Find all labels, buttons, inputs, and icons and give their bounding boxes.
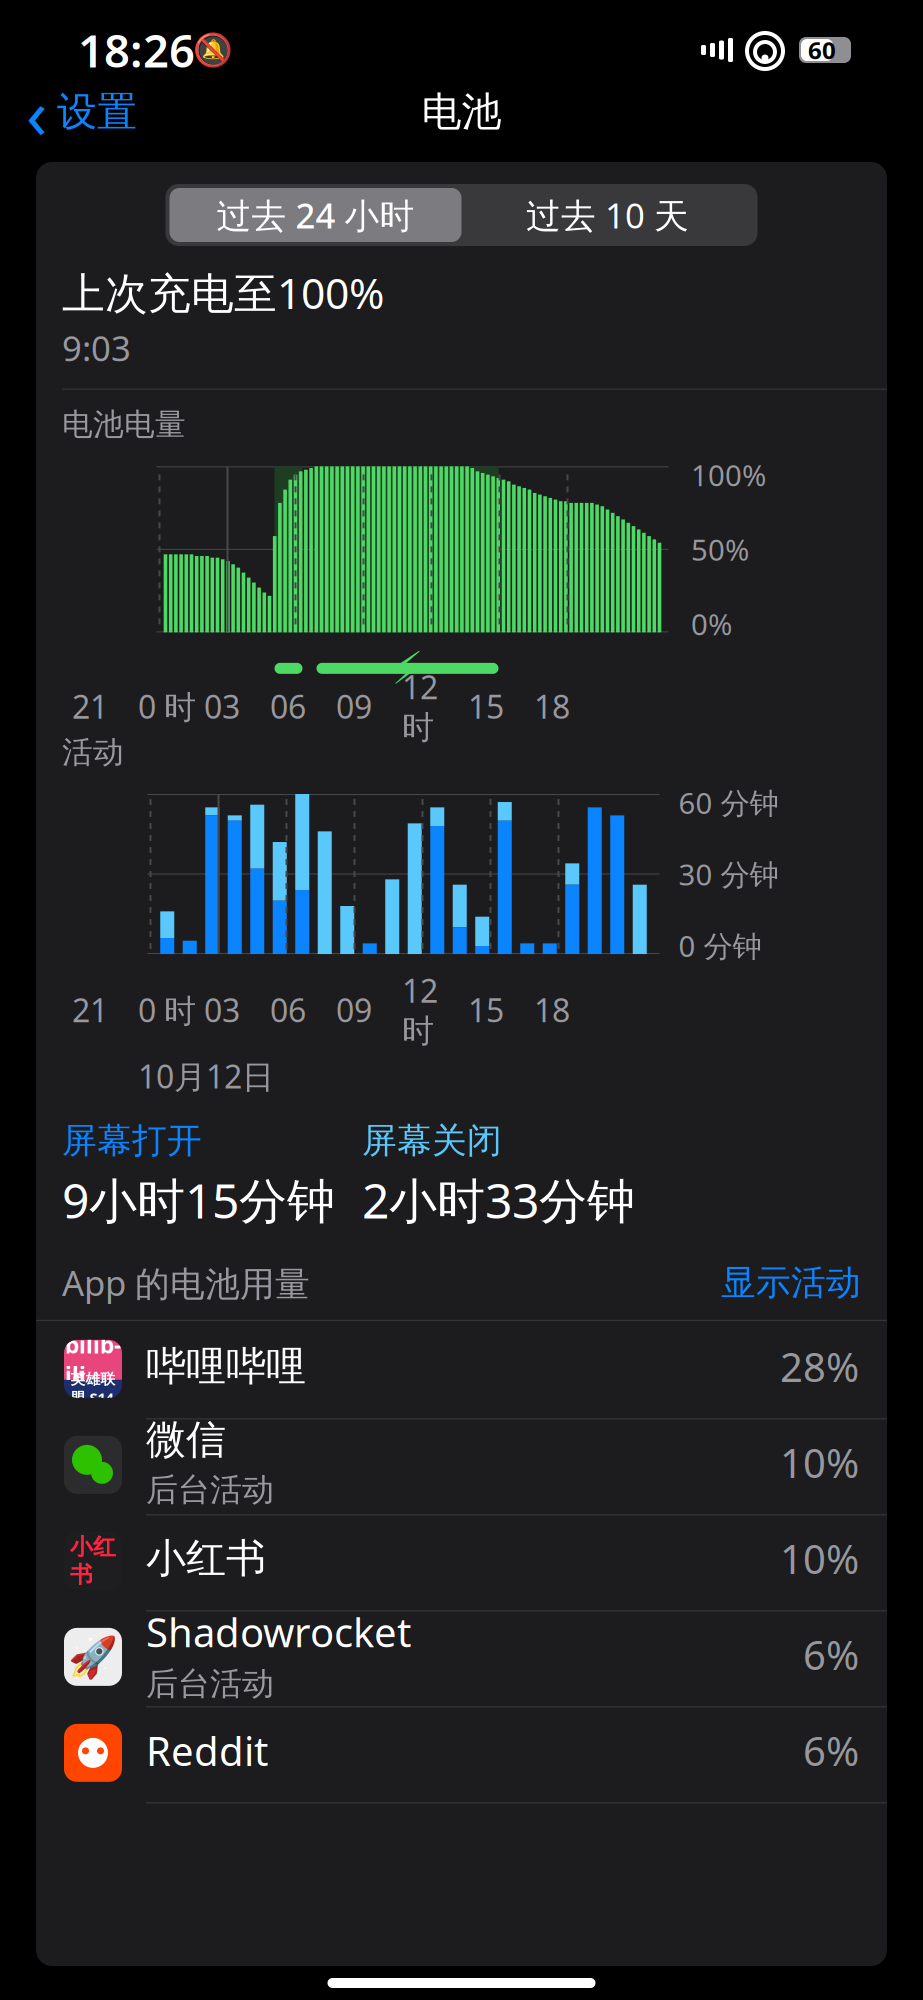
staticText: 09 <box>336 685 372 728</box>
staticText: 小红书 <box>70 1533 116 1589</box>
staticText: 过去 24 小时 <box>216 192 414 238</box>
staticText: 0 分钟 <box>678 926 761 965</box>
staticText: 60 分钟 <box>678 783 778 822</box>
staticText: 后台活动 <box>146 1664 274 1704</box>
staticText: 2小时33分钟 <box>362 1168 635 1232</box>
staticText: 15 <box>468 989 504 1031</box>
staticText: 英雄联盟 S14 <box>70 1370 115 1408</box>
button[interactable]: 过去 10 天 <box>461 188 753 242</box>
staticText: ‹ <box>26 66 47 158</box>
staticText: 60 <box>808 34 836 66</box>
staticText: 0 时 <box>138 685 196 728</box>
staticText: 6% <box>803 1724 859 1777</box>
staticText: 🔕 <box>193 32 233 68</box>
staticText: 100% <box>691 455 766 494</box>
staticText: 03 <box>204 685 240 728</box>
staticText: 12 时 <box>402 665 438 747</box>
staticText: ⚡︎ <box>391 643 423 694</box>
staticText: 9小时15分钟 <box>62 1168 335 1232</box>
button[interactable]: 过去 24 小时 <box>169 188 461 242</box>
staticText: bilibili <box>65 1330 121 1390</box>
staticText: 后台活动 <box>146 1470 274 1510</box>
staticText: 电池 <box>421 87 501 136</box>
button[interactable]: 显示活动 <box>721 1261 861 1304</box>
staticText: 上次充电至100% <box>62 264 384 321</box>
staticText: 显示活动 <box>721 1261 861 1304</box>
staticText: Shadowrocket <box>146 1605 411 1658</box>
staticText: 小红书 <box>146 1534 266 1583</box>
button[interactable]: 🚀 <box>36 1609 887 1705</box>
staticText: 微信 <box>146 1415 226 1464</box>
staticText: App 的电池用量 <box>62 1260 310 1306</box>
staticText: 12 时 <box>402 969 438 1051</box>
staticText: 50% <box>691 530 749 569</box>
staticText: 18:26 <box>78 20 195 80</box>
staticText: 活动 <box>62 733 124 771</box>
staticText: 03 <box>204 989 240 1031</box>
staticText: 6% <box>803 1628 859 1681</box>
button[interactable]: bilibili <box>36 1321 887 1417</box>
staticText: 30 分钟 <box>678 855 778 894</box>
staticText: 过去 10 天 <box>526 192 689 238</box>
staticText: 0% <box>691 604 732 643</box>
staticText: 哔哩哔哩 <box>146 1342 306 1391</box>
staticText: 21 <box>72 989 108 1031</box>
staticText: Reddit <box>146 1724 268 1777</box>
staticText: 21 <box>72 685 108 728</box>
button[interactable]: 小红书 <box>36 1513 887 1609</box>
staticText: 18 <box>534 989 570 1031</box>
button[interactable]: 微信 <box>36 1417 887 1513</box>
staticText: 18 <box>534 685 570 728</box>
staticText: 🚀 <box>68 1634 118 1680</box>
button[interactable]: ‹ <box>0 84 151 140</box>
staticText: 09 <box>336 989 372 1031</box>
staticText: 15 <box>468 685 504 728</box>
staticText: 屏幕关闭 <box>362 1119 502 1162</box>
staticText: 28% <box>780 1340 859 1393</box>
staticText: 0 时 <box>138 989 196 1031</box>
staticText: 10月12日 <box>138 1055 274 1097</box>
staticText: 10% <box>780 1436 859 1489</box>
staticText: 10% <box>780 1532 859 1585</box>
staticText: 06 <box>270 989 306 1031</box>
button[interactable]: Reddit <box>36 1705 887 1801</box>
staticText: 电池电量 <box>62 406 186 443</box>
staticText: 9:03 <box>62 325 131 371</box>
staticText: 06 <box>270 685 306 728</box>
staticText: 设置 <box>57 87 137 136</box>
staticText: 屏幕打开 <box>62 1119 202 1162</box>
